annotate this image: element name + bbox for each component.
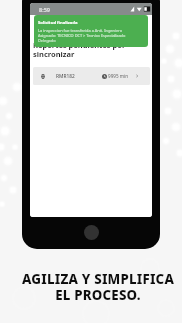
button[interactable]: RMR182: [33, 67, 150, 85]
staticText: RMR182: [56, 73, 75, 80]
staticText: 8:59: [39, 6, 50, 13]
staticText: La inspeccion fue transferida a Anti. In…: [38, 28, 126, 43]
staticText: Solicitud finalizada: [38, 20, 78, 26]
staticText: Reportes pendientes por sincronizar: [33, 40, 126, 60]
button[interactable]: Home: [84, 225, 99, 240]
button[interactable]: Solicitud finalizada: [34, 15, 148, 47]
staticText: AGILIZA Y SIMPLIFICA EL PROCESO.: [22, 270, 174, 304]
staticText: 9995 min: [108, 73, 129, 79]
